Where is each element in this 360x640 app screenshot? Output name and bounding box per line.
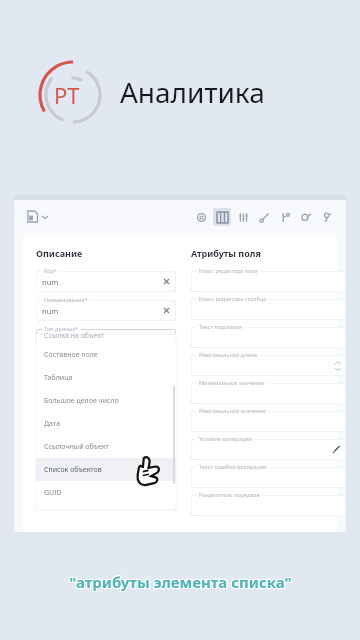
staticText: num	[42, 306, 59, 316]
button[interactable]	[191, 495, 346, 516]
button[interactable]	[191, 411, 346, 432]
button[interactable]	[191, 355, 346, 376]
button[interactable]: Дата	[36, 412, 176, 435]
staticText: Наименование*	[44, 296, 88, 303]
staticText: Аналитика	[120, 73, 265, 111]
staticText: Класс редактора столбца	[199, 295, 267, 302]
button[interactable]: Clear	[162, 306, 171, 315]
staticText: Ссылка на объект	[44, 331, 105, 340]
button[interactable]	[191, 299, 346, 320]
button[interactable]: Большое целое число	[36, 389, 176, 412]
staticText: Ссылочный объект	[44, 442, 109, 452]
staticText: "атрибуты элемента списка"	[70, 572, 293, 592]
staticText: "атрибуты элемента списка"	[69, 573, 292, 593]
staticText: Условие валидации	[199, 435, 252, 442]
staticText: Дата	[44, 419, 61, 429]
staticText: Разделитель порядков	[199, 491, 260, 498]
staticText: Код*	[44, 267, 57, 274]
button[interactable]: Edit	[255, 208, 273, 226]
staticText: "атрибуты элемента списка"	[70, 573, 293, 593]
staticText: "атрибуты элемента списка"	[70, 571, 293, 591]
staticText: Таблица	[44, 373, 73, 383]
button[interactable]	[191, 271, 346, 292]
button[interactable]: num	[36, 271, 176, 292]
staticText: "атрибуты элемента списка"	[68, 571, 291, 591]
button[interactable]: Filters	[234, 208, 252, 226]
staticText: Текст подсказки	[199, 323, 242, 330]
staticText: Минимальное значение	[199, 379, 265, 386]
button[interactable]	[191, 467, 346, 488]
button[interactable]: GUID	[36, 481, 176, 504]
staticText: Список объектов	[44, 465, 102, 475]
staticText: Описание	[36, 247, 83, 259]
button[interactable]	[191, 383, 346, 404]
button[interactable]	[191, 327, 346, 348]
staticText: Текст ошибки валидации	[199, 463, 267, 470]
button[interactable]: Edit	[191, 439, 346, 460]
button[interactable]: Ссылочный объект	[36, 435, 176, 458]
button[interactable]: Document menu	[23, 207, 52, 226]
button[interactable]: Список объектов	[36, 458, 176, 481]
staticText: num	[42, 277, 59, 287]
staticText: "атрибуты элемента списка"	[68, 572, 291, 592]
button[interactable]: Link	[297, 208, 315, 226]
button[interactable]: Составное поле	[36, 343, 176, 366]
staticText: Максимальная длина	[199, 351, 258, 358]
button[interactable]: Columns	[213, 208, 231, 226]
button[interactable]: Edit	[332, 445, 341, 454]
button[interactable]: Целое число	[36, 329, 176, 350]
staticText: "атрибуты элемента списка"	[69, 572, 292, 592]
staticText: PT	[54, 80, 80, 110]
button[interactable]: num	[36, 300, 176, 321]
staticText: Составное поле	[44, 350, 98, 360]
staticText: Максимальное значение	[199, 407, 266, 414]
staticText: "атрибуты элемента списка"	[69, 571, 292, 591]
button[interactable]: Branch	[276, 208, 294, 226]
staticText: Большое целое число	[44, 396, 119, 406]
staticText: Тип данных*	[44, 325, 79, 332]
staticText: Целое число	[42, 335, 89, 345]
button[interactable]: Таблица	[36, 366, 176, 389]
staticText: Атрибуты поля	[191, 247, 261, 259]
button[interactable]: Settings	[192, 208, 210, 226]
button[interactable]: Action	[318, 208, 336, 226]
button[interactable]: Clear	[162, 277, 171, 286]
staticText: GUID	[44, 488, 62, 498]
staticText: Класс редактора поля	[199, 267, 258, 274]
staticText: "атрибуты элемента списка"	[68, 573, 291, 593]
